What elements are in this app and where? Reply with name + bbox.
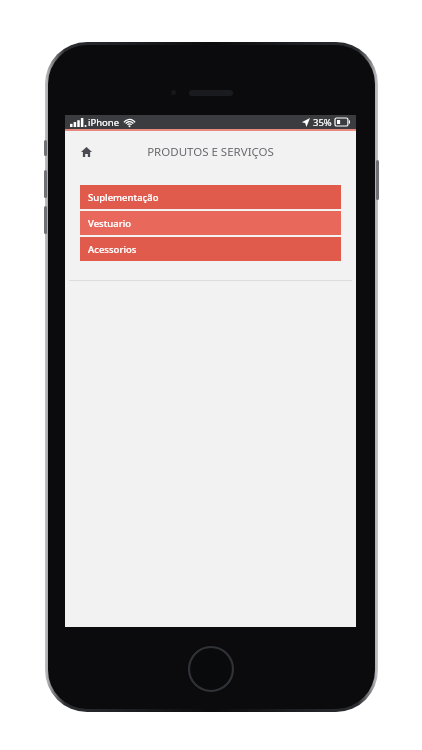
staticText: 35% — [313, 116, 332, 129]
button[interactable]: Acessorios — [80, 237, 341, 261]
button[interactable]: Home — [74, 140, 98, 164]
button[interactable]: Suplementação — [80, 185, 341, 209]
staticText: iPhone — [88, 116, 120, 129]
button[interactable]: Vestuario — [80, 211, 341, 235]
staticText: Acessorios — [88, 243, 137, 256]
staticText: PRODUTOS E SERVIÇOS — [147, 144, 274, 160]
staticText: Vestuario — [88, 217, 132, 230]
staticText: Suplementação — [88, 191, 159, 204]
